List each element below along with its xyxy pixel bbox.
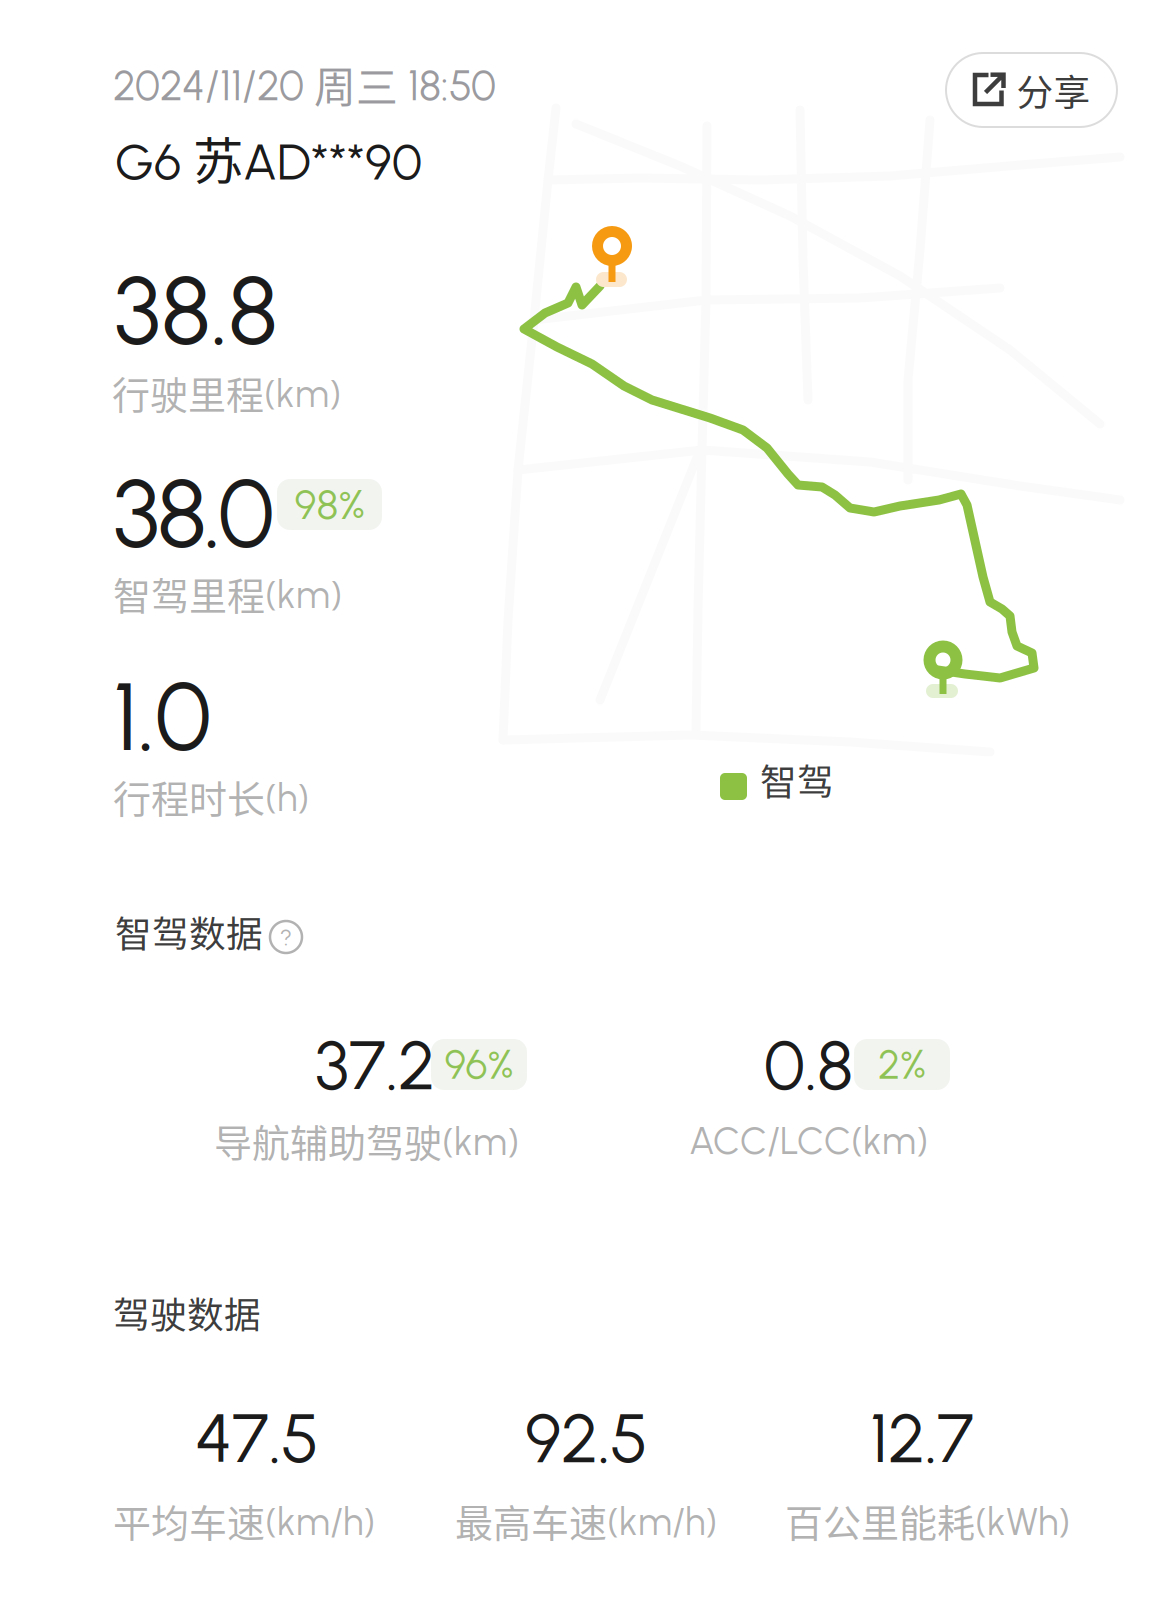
staticText: 智驾	[760, 753, 834, 806]
button[interactable]: 分享	[946, 53, 1117, 127]
staticText: 92.5	[525, 1397, 648, 1479]
staticText: 2024/11/20 周三 18:50	[113, 54, 496, 115]
staticText: 38.0	[113, 457, 274, 571]
staticText: 行程时长(h)	[113, 769, 309, 824]
staticText: 37.2	[315, 1024, 435, 1106]
staticText: 1.0	[113, 660, 211, 774]
staticText: 47.5	[195, 1397, 319, 1479]
staticText: 驾驶数据	[113, 1286, 261, 1339]
staticText: 导航辅助驾驶(km)	[214, 1113, 519, 1168]
staticText: 智驾里程(km)	[113, 566, 342, 621]
staticText: 智驾数据	[115, 905, 263, 958]
staticText: 分享	[1016, 63, 1090, 117]
staticText: 百公里能耗(kWh)	[785, 1493, 1070, 1548]
staticText: G6 苏AD***90	[115, 121, 422, 194]
staticText: ACC/LCC(km)	[689, 1118, 928, 1164]
staticText: 平均车速(km/h)	[113, 1493, 375, 1548]
staticText: ?	[280, 923, 292, 951]
staticText: 2%	[878, 1040, 926, 1089]
staticText: 0.8	[764, 1024, 853, 1106]
staticText: 12.7	[870, 1397, 974, 1479]
staticText: 96%	[444, 1040, 513, 1089]
staticText: 最高车速(km/h)	[455, 1493, 717, 1548]
staticText: 行驶里程(km)	[112, 365, 341, 420]
staticText: 38.8	[114, 254, 278, 368]
staticText: 98%	[294, 480, 364, 529]
